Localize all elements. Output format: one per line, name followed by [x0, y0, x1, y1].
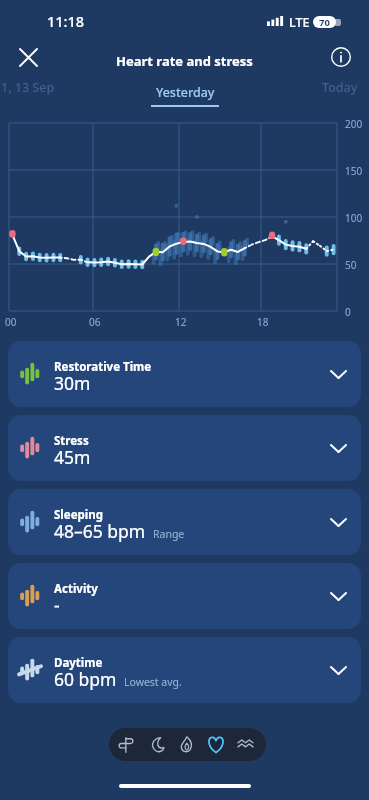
staticText: Heart rate and stress: [116, 52, 253, 70]
staticText: Daytime: [54, 655, 103, 671]
button[interactable]: Heart rate: [204, 729, 228, 760]
staticText: Activity: [54, 581, 98, 597]
staticText: 45m: [54, 445, 91, 469]
staticText: Yesterday: [156, 84, 215, 101]
staticText: 30m: [54, 371, 91, 395]
button[interactable]: Sleep: [145, 729, 169, 760]
staticText: Sleeping: [54, 507, 103, 523]
button[interactable]: Activity: [115, 729, 139, 760]
staticText: Range: [153, 527, 185, 541]
staticText: 70: [319, 16, 330, 28]
button[interactable]: 1, 13 Sep: [1, 79, 55, 96]
button[interactable]: Today: [322, 79, 358, 96]
button[interactable]: Trends: [234, 729, 258, 760]
staticText: 60 bpm: [54, 667, 117, 691]
staticText: 12: [175, 315, 187, 329]
button[interactable]: Daytime: [8, 637, 361, 703]
staticText: -: [54, 593, 60, 617]
button[interactable]: Restorative Time: [8, 341, 361, 407]
staticText: LTE: [289, 14, 310, 31]
staticText: 150: [345, 164, 363, 178]
staticText: 06: [89, 315, 101, 329]
staticText: 00: [5, 315, 17, 329]
staticText: Lowest avg.: [124, 675, 182, 689]
staticText: 0: [345, 305, 351, 319]
button[interactable]: Close: [9, 38, 47, 76]
button[interactable]: Yesterday: [151, 84, 219, 112]
staticText: 200: [345, 117, 363, 131]
staticText: 48–65 bpm: [54, 519, 146, 543]
button[interactable]: Activity: [8, 563, 361, 629]
button[interactable]: Sleeping: [8, 489, 361, 555]
button[interactable]: Stress: [8, 415, 361, 481]
staticText: Stress: [54, 433, 89, 449]
button[interactable]: Energy: [175, 729, 199, 760]
staticText: Restorative Time: [54, 359, 152, 375]
staticText: 18: [257, 315, 269, 329]
staticText: 50: [345, 258, 357, 272]
staticText: 100: [345, 211, 363, 225]
staticText: 11:18: [47, 11, 85, 31]
button[interactable]: Info: [322, 38, 360, 76]
